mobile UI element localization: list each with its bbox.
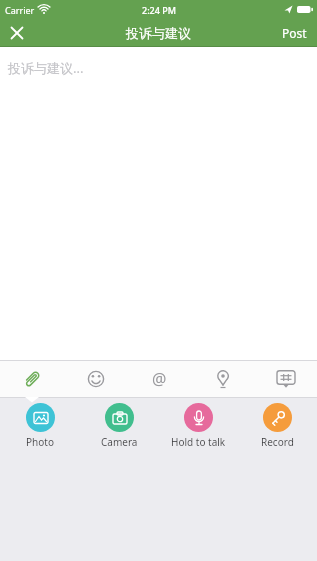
button[interactable]: Post	[282, 19, 317, 47]
staticText: Carrier	[5, 4, 35, 16]
button[interactable]: @	[128, 361, 191, 397]
staticText: 投诉与建议	[126, 25, 191, 41]
staticText: Post	[282, 25, 307, 41]
button[interactable]	[254, 361, 317, 397]
button[interactable]	[64, 361, 128, 397]
button[interactable]: Photo	[0, 403, 80, 449]
button[interactable]	[191, 361, 254, 397]
staticText: Photo	[26, 435, 54, 449]
staticText: @	[152, 368, 167, 390]
button[interactable]	[0, 361, 64, 397]
staticText: Record	[261, 435, 294, 449]
button[interactable]: Camera	[80, 403, 159, 449]
staticText: 2:24 PM	[142, 4, 176, 16]
staticText: 投诉与建议...	[8, 59, 84, 77]
staticText: Hold to talk	[171, 435, 226, 449]
staticText: Camera	[101, 435, 138, 449]
button[interactable]: Hold to talk	[159, 403, 238, 449]
button[interactable]: Record	[238, 403, 317, 449]
button[interactable]	[0, 19, 33, 47]
